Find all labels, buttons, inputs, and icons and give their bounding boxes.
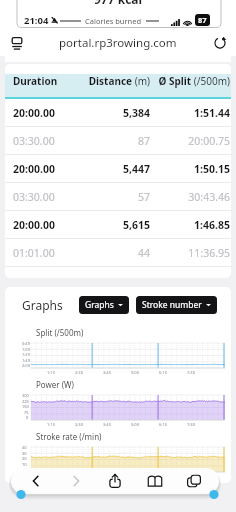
staticText: 5,384 [78,106,150,120]
staticText: 20:00.00 [13,162,78,176]
staticText: 30 [22,451,27,456]
staticText: 03:30.00 [13,190,78,204]
staticText: 3:45 [103,370,111,375]
staticText: 1:46.85 [150,218,230,232]
button[interactable]: Bookmarks [147,473,163,489]
staticText: 1:49 [22,358,30,363]
staticText: 2:30 [75,422,83,427]
staticText: 6:15 [159,422,167,427]
button[interactable]: 03:30.00 [5,183,231,211]
button[interactable]: Back [28,473,44,489]
staticText: 87 [198,15,207,25]
staticText: Distance (m) [78,74,150,88]
staticText: 40 [22,445,27,450]
staticText: 87 [78,134,150,148]
staticText: 75 [24,410,29,415]
staticText: 20:00.00 [13,106,78,120]
staticText: 0:49 [22,341,30,346]
staticText: 03:30.00 [13,134,78,148]
staticText: 1:29 [22,352,30,357]
staticText: Ø Split (/500m) [150,74,230,88]
staticText: 1:15 [47,422,55,427]
staticText: 01:01.00 [13,246,78,260]
staticText: Stroke rate (/min) [36,431,102,442]
staticText: 6:15 [159,474,167,479]
staticText: Stroke number [142,299,202,311]
staticText: 5,447 [78,162,150,176]
staticText: 1:50.15 [150,162,230,176]
staticText: 10 [22,462,27,467]
button[interactable]: Stroke number [136,296,217,314]
staticText: 20:00.00 [13,218,78,232]
staticText: 2:30 [75,370,83,375]
button[interactable]: Reload [213,36,227,50]
staticText: 0 [26,415,29,420]
staticText: 225 [22,399,29,404]
staticText: 977 kcal [94,0,143,7]
staticText: 2:30 [75,474,83,479]
button[interactable]: Page settings [9,35,25,51]
staticText: Graphs [85,299,114,311]
staticText: 6:15 [159,370,167,375]
staticText: Duration [13,74,78,88]
staticText: 30:43.46 [150,190,230,204]
button[interactable]: 01:01.00 [5,239,231,267]
button[interactable]: 20:00.00 [5,211,231,239]
staticText: 3:45 [103,422,111,427]
staticText: 5:00 [131,370,139,375]
button[interactable]: Share [107,473,123,489]
staticText: Calories burned [85,16,142,26]
staticText: Power (W) [36,379,74,390]
button[interactable]: 03:30.00 [5,127,231,155]
staticText: 7:30 [187,370,195,375]
staticText: 7:30 [187,422,195,427]
staticText: 5,615 [78,218,150,232]
button[interactable]: Tabs [186,473,202,489]
button[interactable]: 20:00.00 [5,155,231,183]
staticText: 1:09 [22,347,30,352]
staticText: 21:04 [24,14,49,27]
staticText: 44 [78,246,150,260]
staticText: Graphs [22,297,63,313]
button[interactable]: Graphs [79,296,129,314]
staticText: 2:09 [22,363,30,368]
staticText: 57 [78,190,150,204]
staticText: 7:30 [187,474,195,479]
staticText: 20 [22,456,27,461]
staticText: 5:00 [131,422,139,427]
staticText: 300 [22,393,29,398]
staticText: 150 [22,404,29,409]
staticText: 1:51.44 [150,106,230,120]
staticText: 20:00.75 [150,134,230,148]
staticText: 1:15 [47,370,55,375]
staticText: portal.rp3rowing.com [59,35,177,51]
button[interactable]: 20:00.00 [5,99,231,127]
staticText: Split (/500m) [36,327,84,338]
staticText: 11:36.95 [150,246,230,260]
button[interactable]: Forward [68,473,84,489]
